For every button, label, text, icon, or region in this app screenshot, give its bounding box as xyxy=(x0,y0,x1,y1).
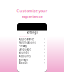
staticText: Language xyxy=(18,48,31,51)
staticText: PREFERENCES xyxy=(18,35,29,37)
button[interactable]: Appearance xyxy=(17,37,47,41)
staticText: Accounts xyxy=(18,54,30,58)
button[interactable]: Storage xyxy=(17,58,47,61)
staticText: Customize your xyxy=(16,8,47,13)
staticText: Settings xyxy=(26,31,37,34)
button[interactable]: About xyxy=(17,61,47,65)
button[interactable]: Language xyxy=(17,48,47,51)
button[interactable]: Accounts xyxy=(17,54,47,58)
staticText: About xyxy=(18,61,27,65)
button[interactable]: Privacy xyxy=(17,44,47,48)
staticText: Privacy xyxy=(18,44,26,48)
staticText: > xyxy=(43,58,45,61)
staticText: Notifications xyxy=(18,41,35,44)
staticText: experience xyxy=(21,14,42,19)
staticText: > xyxy=(43,37,45,41)
button[interactable]: Sounds xyxy=(17,51,47,54)
staticText: > xyxy=(43,48,45,51)
staticText: > xyxy=(43,54,45,58)
staticText: > xyxy=(43,51,45,54)
staticText: > xyxy=(43,44,45,48)
button[interactable]: Notifications xyxy=(17,41,47,44)
staticText: Storage xyxy=(18,58,28,61)
staticText: > xyxy=(43,61,45,65)
staticText: Sounds xyxy=(18,51,28,54)
staticText: > xyxy=(43,41,45,44)
staticText: Appearance xyxy=(18,37,34,41)
